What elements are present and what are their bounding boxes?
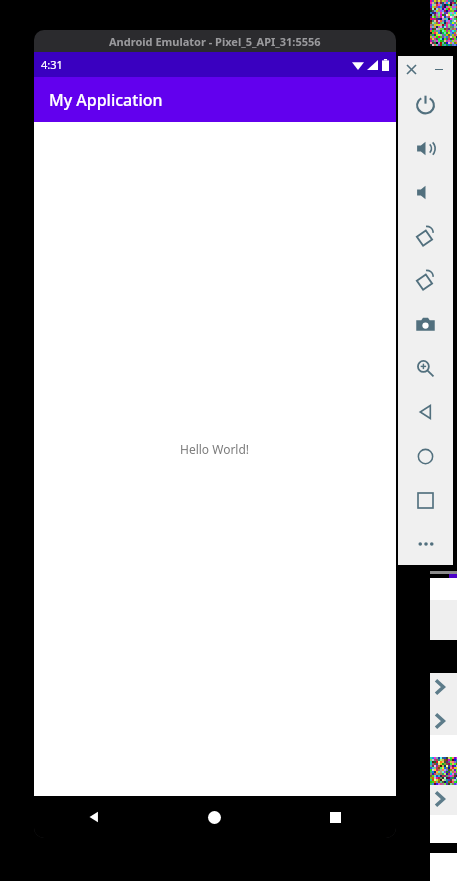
button[interactable]: My Application [34,77,396,122]
button[interactable]: Minimize [425,56,453,82]
staticText: Hello World! [180,441,250,457]
button[interactable]: Overview [398,478,453,522]
button[interactable]: Close [398,56,425,82]
staticText: Android Emulator - Pixel_5_API_31:5556 [109,34,321,49]
button[interactable]: Power [398,82,453,126]
button[interactable]: Zoom [398,346,453,390]
button[interactable]: Rotate right [398,258,453,302]
button[interactable]: Home [398,434,453,478]
button[interactable]: More [398,522,453,565]
staticText: 4:31 [41,57,63,72]
button[interactable]: Take screenshot [398,302,453,346]
button[interactable]: Volume down [398,170,453,214]
button[interactable]: Back [34,796,154,838]
button[interactable]: Back [398,390,453,434]
button[interactable]: Volume up [398,126,453,170]
button[interactable]: Rotate left [398,214,453,258]
button[interactable]: Recent apps [275,796,396,838]
staticText: My Application [49,89,163,111]
button[interactable]: Home [154,796,275,838]
